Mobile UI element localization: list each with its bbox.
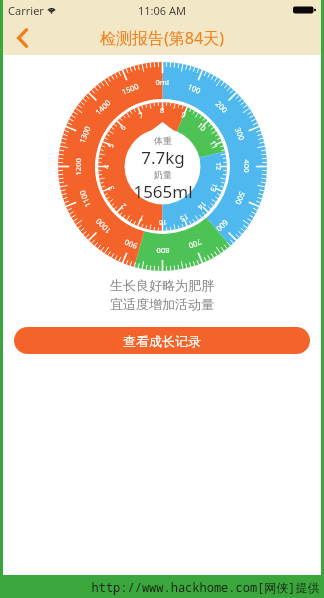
staticText: 宜适度增加活动量 [110, 296, 214, 312]
button[interactable]: 查看成长记录 [14, 327, 310, 354]
staticText: 11:06 AM [138, 3, 186, 18]
staticText: http://www.hackhome.com[网侠]提供 [91, 579, 320, 595]
staticText: 奶量 [154, 169, 172, 180]
staticText: 查看成长记录 [123, 333, 201, 349]
staticText: 1565ml [133, 180, 193, 203]
staticText: 体重 [154, 135, 172, 146]
staticText: 检测报告(第84天) [100, 27, 224, 49]
staticText: 7.7kg [141, 146, 185, 169]
staticText: 生长良好略为肥胖 [110, 277, 214, 293]
button[interactable]: Back [3, 20, 41, 55]
staticText: Carrier [8, 3, 44, 18]
